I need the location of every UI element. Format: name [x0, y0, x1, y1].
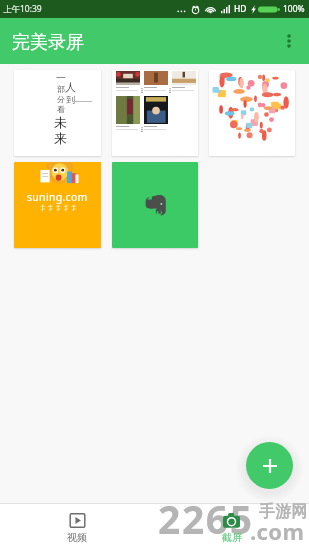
button[interactable]: 截屏 — [154, 507, 309, 550]
staticText: 手游网 — [259, 502, 307, 522]
staticText: HD — [234, 3, 247, 15]
button[interactable]: suning.com — [14, 162, 101, 248]
staticText: 部 — [57, 84, 65, 94]
button[interactable] — [112, 70, 198, 156]
button[interactable]: 一 — [14, 70, 101, 156]
button[interactable] — [112, 162, 198, 248]
staticText: 来 — [54, 130, 67, 146]
staticText: 人 — [65, 80, 76, 94]
staticText: 视频 — [67, 531, 87, 544]
staticText: 截屏 — [222, 531, 242, 544]
button[interactable]: Add — [246, 442, 293, 489]
button[interactable] — [209, 70, 295, 156]
staticText: 一 — [56, 71, 66, 84]
staticText: 未 — [54, 114, 67, 130]
staticText: suning.com — [27, 190, 88, 204]
button[interactable]: More options — [269, 18, 309, 64]
staticText: 分 — [57, 94, 65, 104]
staticText: .com — [250, 516, 305, 546]
staticText: 完美录屏 — [12, 31, 84, 54]
staticText: 上午10:39 — [3, 3, 42, 15]
staticText: 2265 — [158, 492, 254, 545]
button[interactable]: 视频 — [0, 507, 154, 550]
staticText: 看 — [57, 104, 65, 114]
staticText: 100% — [283, 3, 305, 15]
staticText: 到 — [66, 94, 75, 105]
